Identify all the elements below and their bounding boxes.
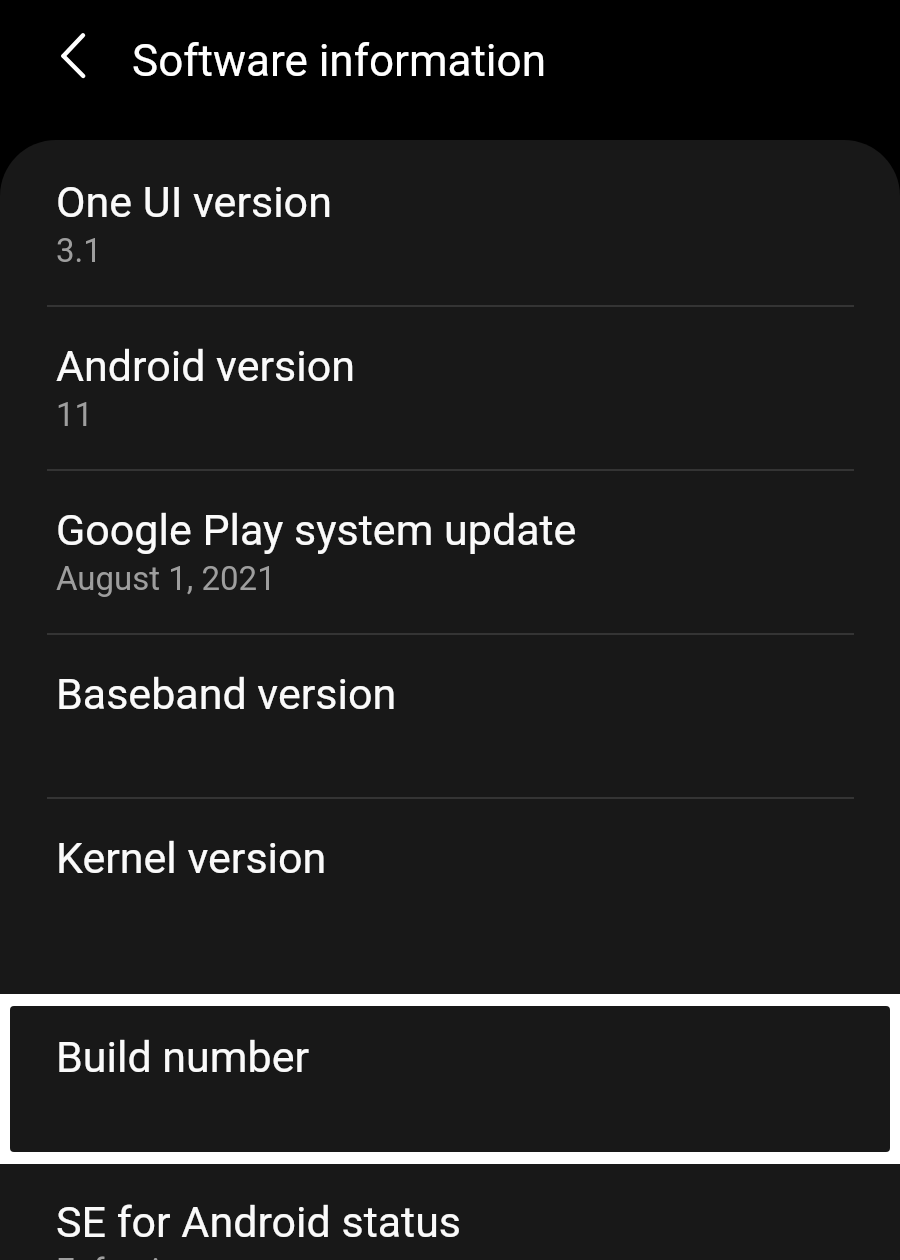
staticText: Software information (132, 35, 546, 87)
button[interactable]: Google Play system update (0, 468, 900, 632)
button[interactable]: Baseband version (0, 632, 900, 796)
button[interactable]: SE for Android status (0, 1164, 900, 1260)
staticText: Build number (56, 1032, 310, 1082)
staticText: Kernel version (56, 833, 327, 883)
staticText: Baseband version (56, 669, 397, 719)
button[interactable]: Android version (0, 304, 900, 468)
staticText: 3.1 (56, 231, 102, 270)
button[interactable]: Navigate up (21, 14, 105, 98)
staticText: August 1, 2021 (56, 559, 276, 598)
button[interactable]: One UI version (0, 140, 900, 304)
staticText: Android version (56, 341, 355, 391)
staticText: Google Play system update (56, 505, 577, 555)
staticText: SE for Android status (56, 1197, 462, 1247)
staticText: Enforcing (56, 1251, 197, 1260)
button[interactable]: Build number (0, 994, 900, 1164)
button[interactable]: Kernel version (0, 796, 900, 960)
staticText: 11 (56, 395, 94, 434)
staticText: One UI version (56, 177, 332, 227)
